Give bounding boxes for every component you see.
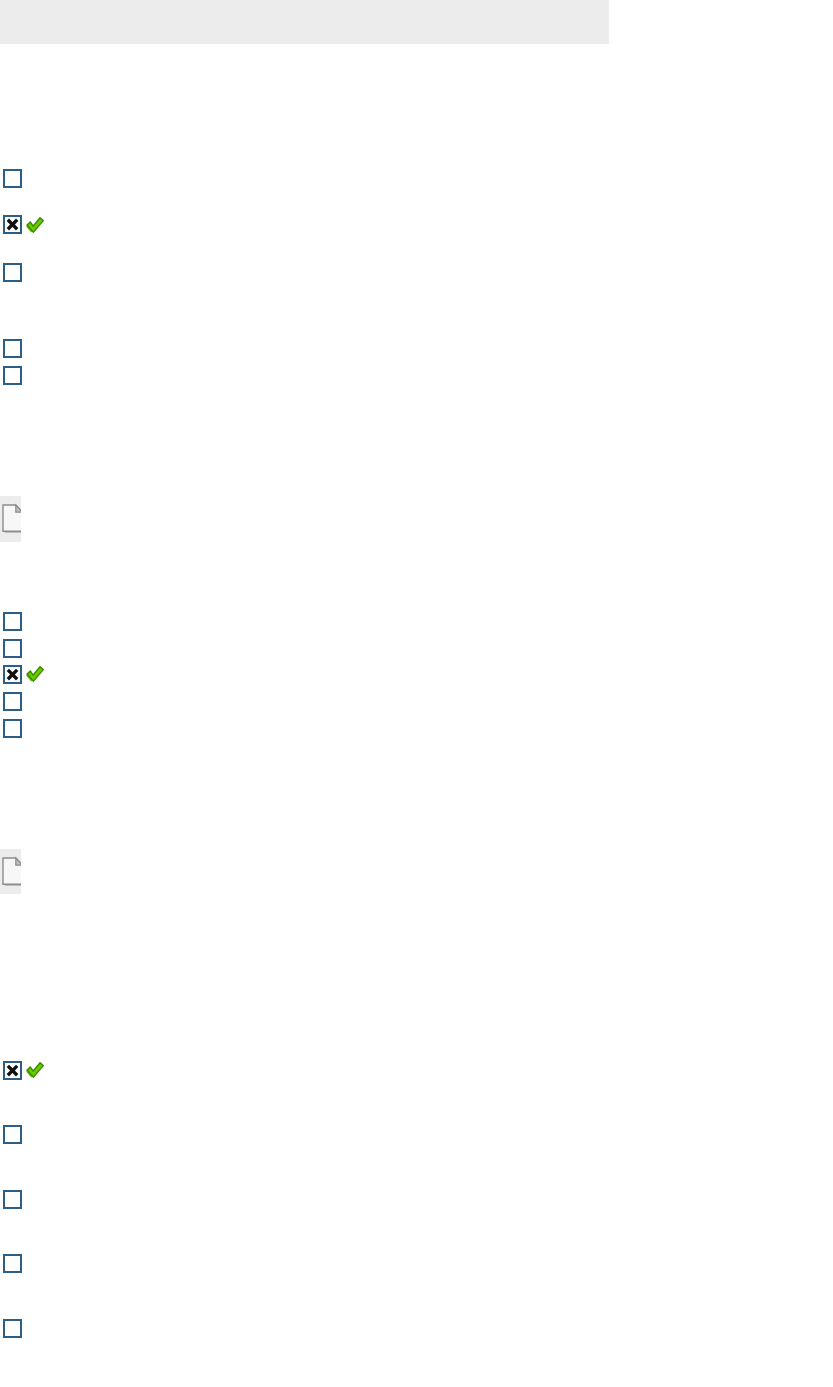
button[interactable]: Unchecked option	[3, 263, 22, 282]
button[interactable]: Unchecked option	[3, 366, 22, 385]
button[interactable]	[0, 0, 833, 44]
button[interactable]: Unchecked option	[3, 1125, 22, 1144]
button[interactable]: Document	[0, 496, 833, 542]
button[interactable]: Unchecked option	[3, 719, 22, 738]
button[interactable]: Unchecked option	[3, 612, 22, 631]
button[interactable]: Correct answer	[25, 215, 45, 235]
button[interactable]: Checked option	[3, 1061, 22, 1080]
button[interactable]: Document	[0, 849, 833, 894]
button[interactable]: Correct answer	[25, 664, 45, 684]
button[interactable]: Unchecked option	[3, 1190, 22, 1209]
button[interactable]: Unchecked option	[3, 1254, 22, 1273]
button[interactable]: Unchecked option	[3, 692, 22, 711]
button[interactable]: Correct answer	[25, 1060, 45, 1080]
button[interactable]: Unchecked option	[3, 339, 22, 358]
button[interactable]: Unchecked option	[3, 1319, 22, 1338]
button[interactable]: Document	[3, 858, 23, 886]
button[interactable]: Unchecked option	[3, 169, 22, 188]
button[interactable]: Checked option	[3, 215, 22, 234]
button[interactable]: Checked option	[3, 665, 22, 684]
button[interactable]: Unchecked option	[3, 639, 22, 658]
button[interactable]: Document	[3, 505, 23, 533]
